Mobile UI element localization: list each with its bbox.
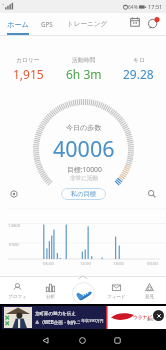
button[interactable]: 活動時間 (56, 56, 111, 82)
staticText: ～年収390万円 (77, 318, 104, 323)
staticText: GPS (41, 20, 53, 28)
staticText: フィード (107, 294, 126, 300)
button[interactable]: キロ (111, 56, 166, 82)
button[interactable]: GPS (37, 14, 57, 34)
staticText: 活動時間 (72, 56, 96, 63)
button[interactable]: Recents (110, 333, 124, 347)
staticText: 40006 (53, 134, 115, 163)
staticText: 分析 (46, 294, 56, 300)
staticText: 29.28 (123, 66, 154, 82)
staticText: 6h 3m (66, 66, 102, 82)
button[interactable]: Home (75, 333, 89, 347)
staticText: 13800 (8, 222, 21, 228)
staticText: る《WEB企画・制作… (35, 319, 80, 325)
button[interactable]: 分析 (34, 276, 67, 306)
staticText: ホーム (7, 20, 29, 29)
staticText: カロリー (16, 56, 40, 63)
staticText: 00:00 (147, 260, 158, 266)
button[interactable]: Start activity (72, 282, 95, 305)
button[interactable]: プロフィ (0, 276, 34, 306)
staticText: 17:51 (148, 3, 163, 11)
button[interactable]: 私の目標 (61, 188, 106, 200)
button[interactable]: Settings (7, 187, 21, 201)
button[interactable]: ホーム (3, 14, 33, 34)
button[interactable]: 京町家の魅力を伝え (0, 304, 166, 330)
button[interactable]: フィード (100, 276, 133, 306)
staticText: 18:00 (113, 260, 124, 266)
staticText: 目標:10000 (67, 165, 102, 174)
staticText: 私の目標 (71, 190, 96, 198)
staticText: プロフィ (8, 294, 27, 300)
staticText: 12:00 (80, 260, 91, 266)
staticText: 今日の歩数 (66, 123, 102, 132)
button[interactable]: Calendar (127, 14, 143, 30)
staticText: ウラナビ (133, 315, 152, 321)
staticText: 発見 (145, 294, 155, 300)
staticText: 非常に活動 (70, 175, 99, 182)
staticText: 06:00 (43, 260, 54, 266)
staticText: NEXT (147, 318, 155, 322)
button[interactable]: Close ad (153, 310, 164, 321)
staticText: 6900 (9, 241, 19, 247)
staticText: 64% (128, 4, 138, 11)
button[interactable]: カロリー (0, 56, 56, 82)
button[interactable]: トレーニング (63, 14, 112, 34)
button[interactable]: Search (145, 187, 159, 201)
button[interactable]: Messages (144, 14, 162, 32)
staticText: 京町家の魅力を伝え (35, 311, 76, 317)
button[interactable]: 発見 (133, 276, 166, 306)
staticText: キロ (133, 56, 145, 63)
button[interactable]: Back (38, 333, 52, 347)
staticText: 1,915 (13, 66, 44, 82)
staticText: トレーニング (67, 20, 108, 28)
